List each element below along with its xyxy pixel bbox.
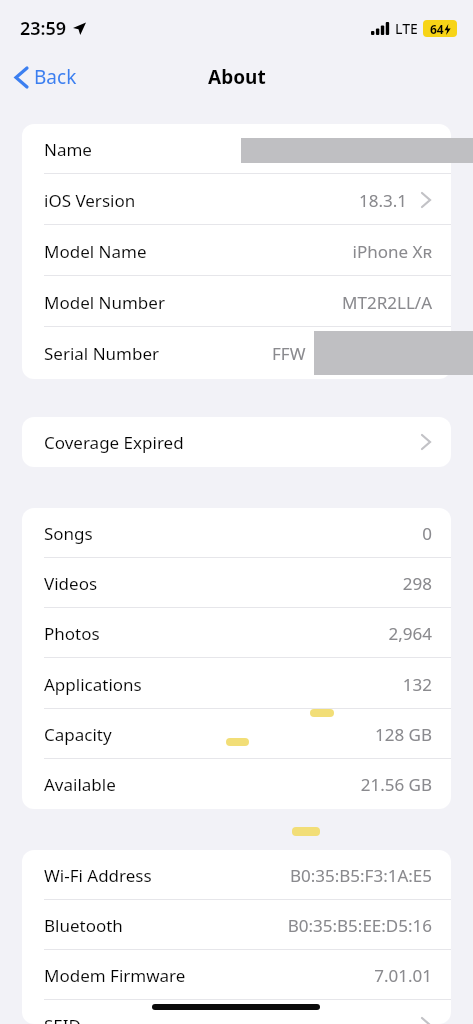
button[interactable]: Photos [22, 608, 451, 658]
staticText: Back [34, 64, 77, 90]
staticText: iPhone Xʀ [352, 240, 432, 263]
button[interactable]: Applications [22, 659, 451, 709]
staticText: SEID [44, 1014, 81, 1024]
button[interactable]: iOS Version [22, 175, 451, 225]
staticText: 132 [402, 673, 432, 696]
staticText: Photos [44, 622, 100, 645]
staticText: Videos [44, 572, 98, 595]
button[interactable]: Available [22, 759, 451, 809]
staticText: 128 GB [374, 723, 432, 746]
button[interactable]: Capacity [22, 709, 451, 759]
button[interactable]: Songs [22, 508, 451, 558]
staticText: Songs [44, 522, 93, 545]
button[interactable]: Bluetooth [22, 900, 451, 950]
staticText: B0:35:B5:F3:1A:E5 [289, 864, 432, 887]
staticText: FFW [272, 342, 306, 365]
staticText: 23:59 [20, 16, 67, 41]
staticText: Applications [44, 673, 142, 696]
staticText: 298 [402, 572, 432, 595]
button[interactable]: Model Name [22, 226, 451, 276]
button[interactable]: Modem Firmware [22, 950, 451, 1000]
staticText: About [208, 64, 266, 90]
staticText: MT2R2LL/A [342, 291, 432, 314]
staticText: 64 [430, 21, 444, 37]
staticText: Name [44, 138, 92, 161]
staticText: Model Name [44, 240, 147, 263]
staticText: Capacity [44, 723, 112, 746]
staticText: 7.01.01 [374, 964, 432, 987]
staticText: LTE [395, 19, 418, 38]
staticText: Coverage Expired [44, 431, 184, 454]
other: Home indicator [152, 1004, 320, 1010]
staticText: 2,964 [388, 622, 432, 645]
staticText: 0 [422, 522, 432, 545]
button[interactable]: Name [22, 124, 451, 174]
staticText: Wi-Fi Address [44, 864, 152, 887]
staticText: Available [44, 773, 116, 796]
button[interactable]: Model Number [22, 277, 451, 327]
staticText: Modem Firmware [44, 964, 186, 987]
button[interactable]: Back [12, 60, 81, 94]
button[interactable]: Wi-Fi Address [22, 850, 451, 900]
button[interactable]: SEID [22, 1000, 451, 1024]
staticText: iOS Version [44, 189, 136, 212]
button[interactable]: Videos [22, 558, 451, 608]
button[interactable]: Coverage Expired [22, 417, 451, 467]
staticText: 21.56 GB [360, 773, 432, 796]
button[interactable]: Serial Number [22, 328, 451, 378]
staticText: B0:35:B5:EE:D5:16 [287, 914, 432, 937]
staticText: Model Number [44, 291, 165, 314]
staticText: Serial Number [44, 342, 160, 365]
staticText: Bluetooth [44, 914, 123, 937]
staticText: 18.3.1 [358, 189, 407, 212]
